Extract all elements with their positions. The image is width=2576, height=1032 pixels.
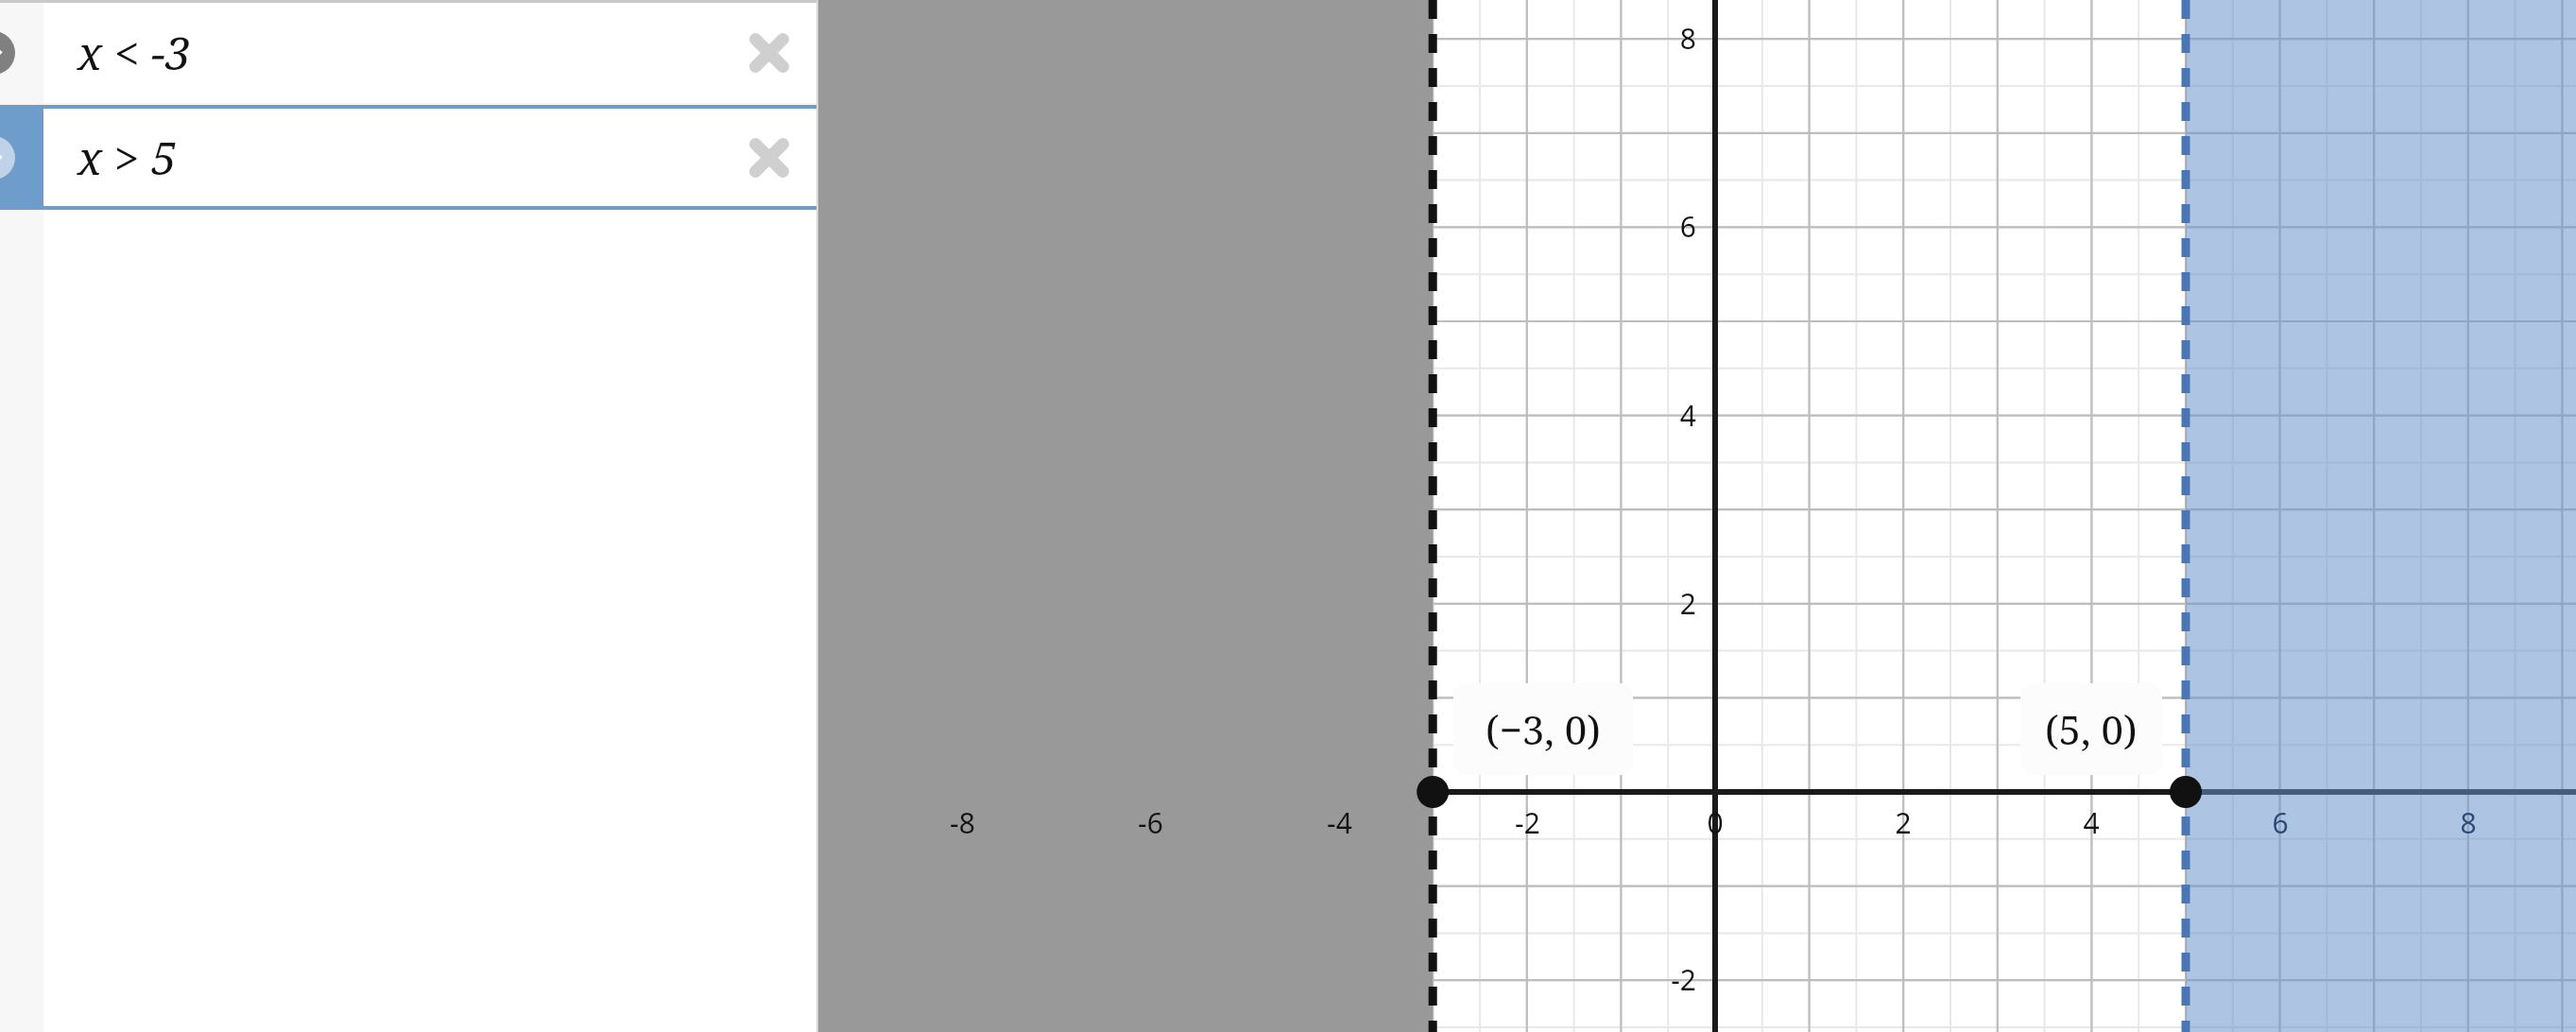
button[interactable]: Line style (0, 105, 818, 210)
staticText: 8 (2460, 803, 2477, 842)
staticText: -2 (1671, 960, 1696, 999)
staticText: -6 (1138, 803, 1163, 842)
button[interactable]: Line style (0, 0, 43, 105)
button[interactable]: Line style (0, 0, 818, 105)
staticText: 8 (1679, 19, 1696, 58)
button[interactable]: Delete expression (733, 122, 805, 194)
staticText: 4 (2083, 803, 2100, 842)
staticText: x < −3 (77, 22, 191, 83)
staticText: 2 (1679, 584, 1696, 623)
staticText: -2 (1515, 803, 1540, 842)
button[interactable]: (5, 0) (2020, 683, 2162, 775)
staticText: (−3, 0) (1485, 702, 1601, 756)
staticText: 2 (1895, 803, 1912, 842)
staticText: -4 (1327, 803, 1352, 842)
button[interactable]: Delete expression (733, 17, 805, 89)
staticText: -8 (950, 803, 975, 842)
staticText: 6 (1679, 207, 1696, 246)
staticText: 0 (1707, 803, 1724, 842)
button[interactable]: (−3, 0) (1453, 683, 1633, 775)
button[interactable]: Line style (0, 105, 43, 210)
staticText: x > 5 (77, 127, 177, 188)
staticText: 6 (2272, 803, 2289, 842)
staticText: 4 (1679, 396, 1696, 435)
staticText: (5, 0) (2045, 702, 2138, 756)
